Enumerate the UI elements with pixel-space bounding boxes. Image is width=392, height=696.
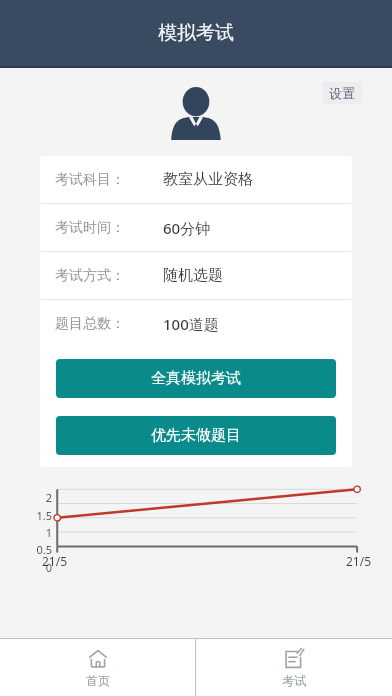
staticText: 题目总数：	[55, 315, 125, 333]
staticText: 0	[12, 560, 52, 575]
other: Profile	[165, 86, 227, 140]
staticText: 21/5	[346, 553, 372, 569]
staticText: 首页	[86, 673, 110, 688]
staticText: 2	[12, 490, 52, 505]
staticText: 考试	[282, 673, 306, 688]
button[interactable]: 全真模拟考试	[56, 359, 336, 398]
button[interactable]: Home	[0, 639, 195, 688]
button[interactable]: 设置	[322, 82, 362, 104]
button[interactable]: 考试方式：	[40, 252, 352, 299]
staticText: 模拟考试	[158, 21, 234, 45]
button[interactable]: 考试科目：	[40, 156, 352, 203]
staticText: 21/5	[42, 553, 68, 569]
staticText: 教室从业资格	[163, 170, 253, 189]
other: Exam	[283, 648, 305, 670]
staticText: 60分钟	[163, 218, 211, 238]
button[interactable]: 优先未做题目	[56, 416, 336, 455]
staticText: 0.5	[12, 542, 52, 557]
staticText: 1	[12, 525, 52, 540]
staticText: 考试科目：	[55, 171, 125, 189]
staticText: 优先未做题目	[151, 426, 241, 445]
staticText: 考试方式：	[55, 267, 125, 285]
button[interactable]: 题目总数：	[40, 300, 352, 347]
button[interactable]: Exam	[196, 639, 392, 688]
button[interactable]: 考试时间：	[40, 204, 352, 251]
staticText: 设置	[329, 85, 355, 101]
staticText: 100道题	[163, 314, 219, 334]
staticText: 随机选题	[163, 266, 223, 285]
staticText: 考试时间：	[55, 219, 125, 237]
staticText: 全真模拟考试	[151, 369, 241, 388]
other: Home	[87, 648, 109, 670]
staticText: 1.5	[12, 508, 52, 523]
